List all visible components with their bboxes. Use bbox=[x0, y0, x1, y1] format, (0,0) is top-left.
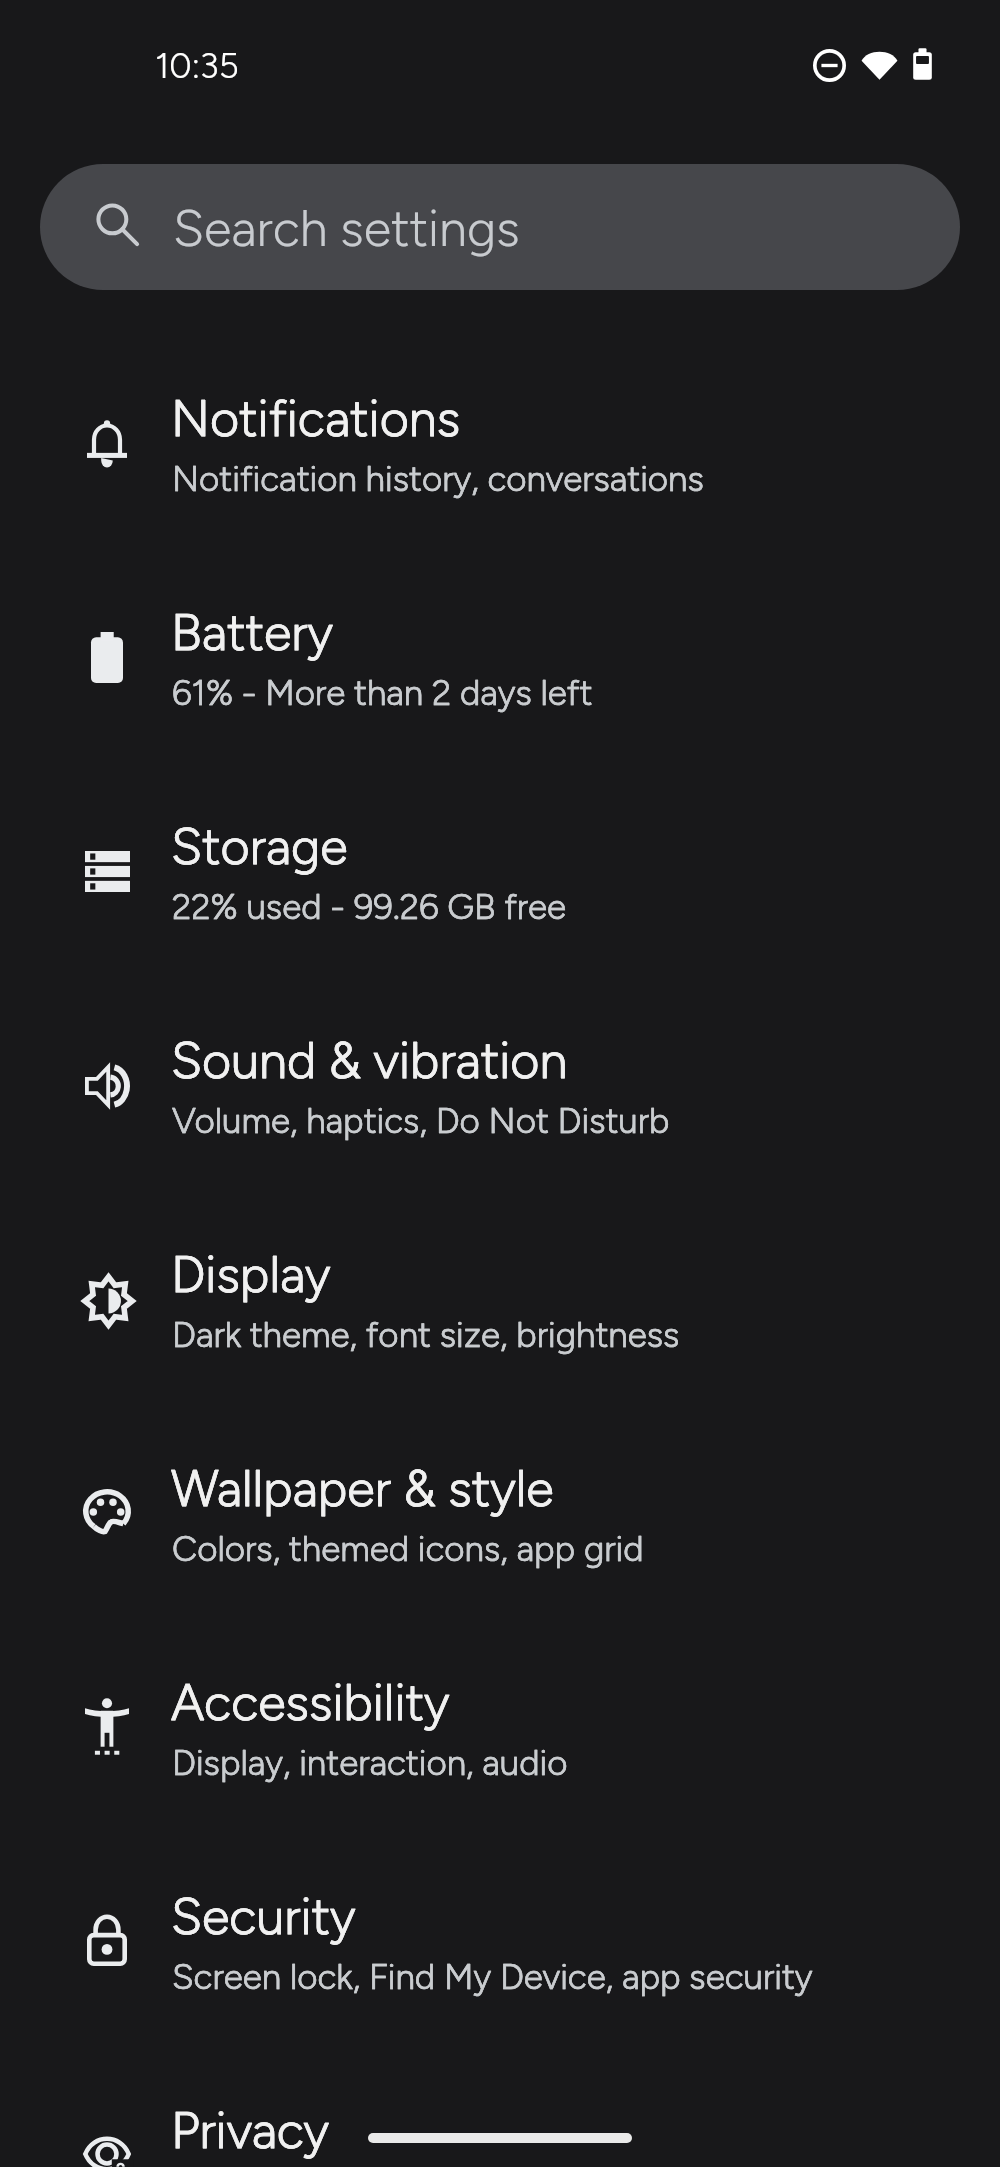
staticText: Notifications bbox=[171, 388, 461, 448]
staticText: Display bbox=[171, 1244, 331, 1304]
staticText: Storage bbox=[171, 816, 348, 876]
staticText: Security bbox=[171, 1886, 356, 1946]
staticText: Privacy bbox=[171, 2100, 329, 2160]
staticText: Colors, themed icons, app grid bbox=[172, 1528, 644, 1570]
staticText: Volume, haptics, Do Not Disturb bbox=[172, 1100, 670, 1142]
button[interactable]: Wallpaper & style bbox=[0, 1408, 1000, 1622]
staticText: Wallpaper & style bbox=[171, 1458, 554, 1518]
staticText: Accessibility bbox=[171, 1672, 450, 1732]
button[interactable]: Search settings bbox=[40, 164, 960, 290]
staticText: Sound & vibration bbox=[171, 1030, 568, 1090]
staticText: Search settings bbox=[173, 198, 520, 258]
staticText: Display, interaction, audio bbox=[172, 1742, 568, 1784]
button[interactable]: Notifications bbox=[0, 338, 1000, 552]
staticText: Storage bbox=[171, 816, 348, 876]
staticText: Notifications bbox=[171, 388, 461, 448]
staticText: Volume, haptics, Do Not Disturb bbox=[172, 1100, 670, 1142]
button[interactable]: Storage bbox=[0, 766, 1000, 980]
staticText: Screen lock, Find My Device, app securit… bbox=[172, 1956, 813, 1998]
button[interactable]: Display bbox=[0, 1194, 1000, 1408]
staticText: 61% - More than 2 days left bbox=[172, 672, 593, 714]
button[interactable]: Security bbox=[0, 1836, 1000, 2050]
staticText: Sound & vibration bbox=[171, 1030, 568, 1090]
staticText: Display bbox=[171, 1244, 331, 1304]
staticText: 22% used - 99.26 GB free bbox=[172, 886, 567, 928]
staticText: Battery bbox=[171, 602, 333, 662]
staticText: Security bbox=[171, 1886, 356, 1946]
staticText: Colors, themed icons, app grid bbox=[172, 1528, 644, 1570]
staticText: 22% used - 99.26 GB free bbox=[172, 886, 567, 928]
button[interactable]: Privacy bbox=[0, 2050, 1000, 2167]
button[interactable]: Sound & vibration bbox=[0, 980, 1000, 1194]
button[interactable]: Battery bbox=[0, 552, 1000, 766]
staticText: Notification history, conversations bbox=[172, 458, 704, 500]
staticText: Battery bbox=[171, 602, 333, 662]
staticText: Dark theme, font size, brightness bbox=[172, 1314, 680, 1356]
staticText: Accessibility bbox=[171, 1672, 450, 1732]
staticText: 61% - More than 2 days left bbox=[172, 672, 593, 714]
staticText: Privacy bbox=[171, 2100, 329, 2160]
staticText: 10:35 bbox=[155, 45, 239, 87]
button[interactable]: Accessibility bbox=[0, 1622, 1000, 1836]
staticText: Dark theme, font size, brightness bbox=[172, 1314, 680, 1356]
staticText: Display, interaction, audio bbox=[172, 1742, 568, 1784]
staticText: Notification history, conversations bbox=[172, 458, 704, 500]
staticText: Screen lock, Find My Device, app securit… bbox=[172, 1956, 813, 1998]
staticText: Wallpaper & style bbox=[171, 1458, 554, 1518]
